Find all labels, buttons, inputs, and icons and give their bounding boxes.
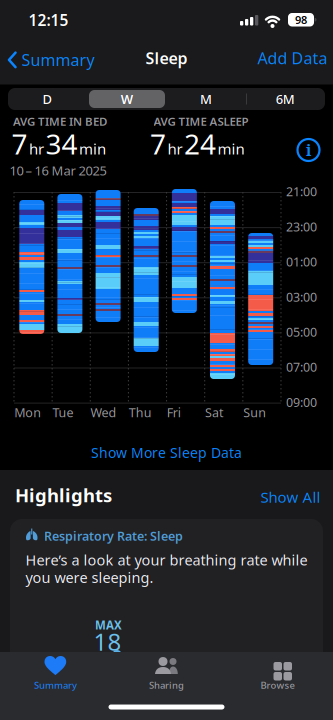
button[interactable]: Summary bbox=[0, 655, 111, 699]
staticText: Thu bbox=[129, 404, 152, 421]
staticText: 10 – 16 Mar 2025 bbox=[9, 161, 106, 179]
button[interactable]: Show More Sleep Data bbox=[91, 443, 242, 462]
button[interactable]: About Sleep bbox=[296, 138, 320, 162]
button[interactable]: M bbox=[166, 88, 245, 110]
staticText: Add Data bbox=[257, 47, 327, 69]
staticText: 7 bbox=[11, 124, 27, 163]
staticText: Browse bbox=[260, 678, 294, 691]
staticText: Sleep bbox=[145, 47, 187, 69]
staticText: min bbox=[79, 138, 106, 159]
staticText: AVG TIME IN BED bbox=[13, 113, 107, 129]
staticText: Summary bbox=[34, 678, 77, 691]
staticText: Sun bbox=[243, 404, 266, 421]
staticText: Highlights bbox=[15, 482, 112, 508]
staticText: MAX bbox=[95, 617, 122, 633]
staticText: Sharing bbox=[149, 678, 184, 691]
staticText: Summary bbox=[21, 49, 94, 71]
staticText: D bbox=[42, 90, 52, 108]
staticText: 98 bbox=[295, 12, 307, 27]
staticText: 07:00 bbox=[286, 358, 317, 375]
staticText: 12:15 bbox=[28, 9, 68, 30]
staticText: Fri bbox=[167, 404, 181, 421]
staticText: 23:00 bbox=[286, 218, 317, 235]
staticText: Tue bbox=[52, 404, 73, 421]
button[interactable]: Show All bbox=[260, 487, 320, 507]
button[interactable]: Sharing bbox=[111, 655, 222, 699]
staticText: Show More Sleep Data bbox=[91, 443, 242, 462]
staticText: 24 bbox=[184, 124, 216, 163]
staticText: W bbox=[121, 90, 133, 108]
button[interactable]: Back to Summary bbox=[6, 49, 94, 71]
staticText: 21:00 bbox=[286, 183, 317, 200]
button[interactable]: Add Data bbox=[257, 47, 327, 69]
staticText: Mon bbox=[14, 404, 41, 421]
staticText: AVG TIME ASLEEP bbox=[153, 113, 248, 129]
staticText: 7 bbox=[150, 124, 166, 163]
staticText: 01:00 bbox=[286, 253, 317, 270]
staticText: Wed bbox=[91, 404, 117, 421]
staticText: 05:00 bbox=[286, 323, 317, 340]
staticText: 6M bbox=[276, 90, 295, 108]
staticText: M bbox=[200, 90, 212, 108]
staticText: Sat bbox=[205, 404, 224, 421]
staticText: Respiratory Rate: Sleep bbox=[44, 527, 183, 544]
staticText: i bbox=[306, 140, 311, 160]
staticText: hr bbox=[167, 138, 182, 159]
staticText: Here’s a look at your breathing rate whi… bbox=[25, 550, 307, 570]
staticText: 03:00 bbox=[286, 288, 317, 305]
staticText: 18 bbox=[93, 625, 121, 658]
button[interactable]: Browse bbox=[222, 655, 333, 699]
staticText: Show All bbox=[260, 487, 320, 507]
staticText: you were sleeping. bbox=[25, 567, 153, 587]
button[interactable]: D bbox=[8, 88, 87, 110]
staticText: 09:00 bbox=[286, 394, 317, 411]
staticText: hr bbox=[29, 138, 44, 159]
button[interactable]: Respiratory Rate: Sleep bbox=[10, 519, 323, 720]
staticText: min bbox=[217, 138, 244, 159]
button[interactable]: W bbox=[87, 88, 166, 110]
button[interactable]: 6M bbox=[246, 88, 325, 110]
staticText: 34 bbox=[45, 124, 77, 163]
